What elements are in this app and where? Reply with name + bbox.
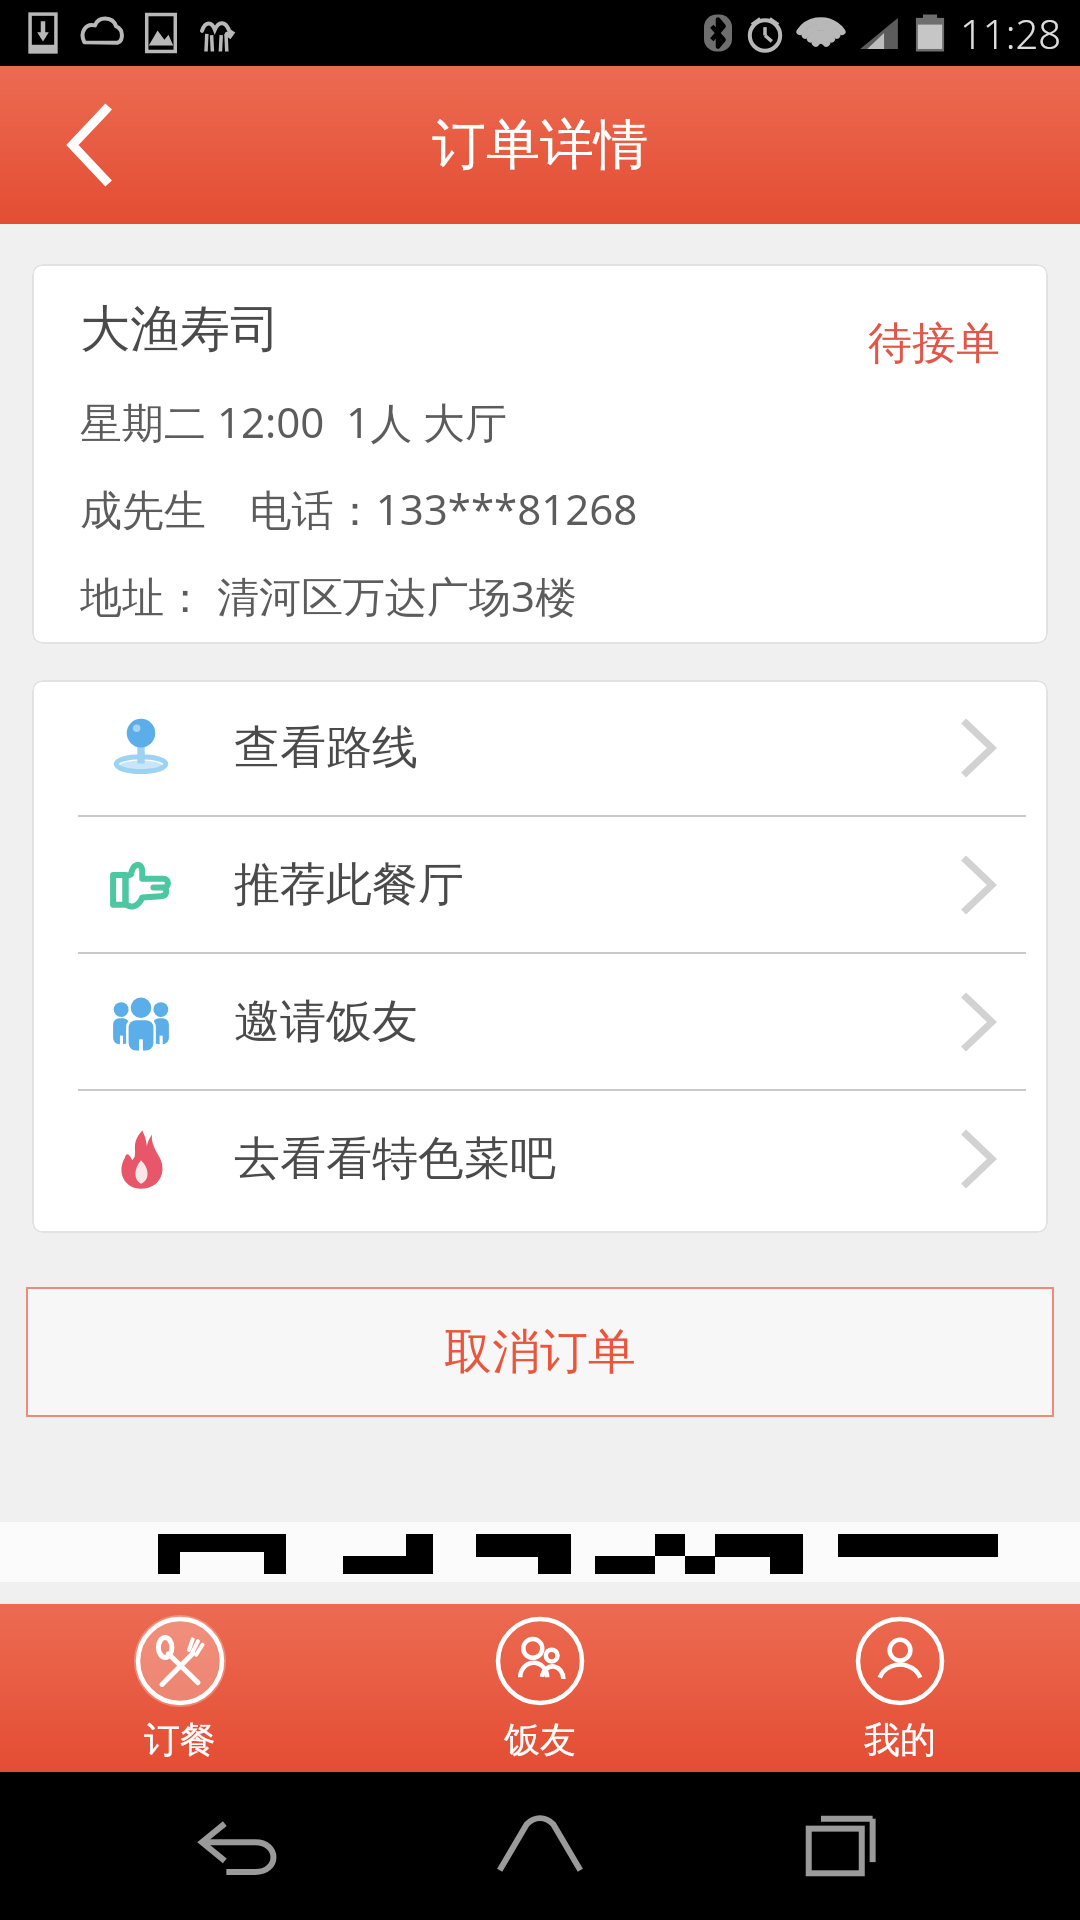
staticText: 11:28 [960, 6, 1062, 60]
button[interactable]: Recent apps [780, 1786, 900, 1906]
staticText: 成先生 电话：133***81268 [80, 480, 638, 537]
button[interactable]: 我的 [720, 1604, 1080, 1772]
staticText: 推荐此餐厅 [234, 856, 464, 914]
staticText: 地址： 清河区万达广场3楼 [80, 567, 577, 624]
button[interactable]: 订餐 [0, 1604, 360, 1772]
button[interactable]: 推荐此餐厅 [32, 817, 1048, 952]
button[interactable]: Home [480, 1786, 600, 1906]
staticText: 去看看特色菜吧 [234, 1130, 556, 1188]
staticText: 订单详情 [432, 111, 648, 179]
staticText: 饭友 [504, 1717, 576, 1762]
staticText: 邀请饭友 [234, 993, 418, 1051]
button[interactable]: 邀请饭友 [32, 954, 1048, 1089]
staticText: 我的 [864, 1717, 936, 1762]
button[interactable]: 取消订单 [26, 1287, 1054, 1417]
button[interactable]: Back [34, 90, 144, 200]
button[interactable]: Back [180, 1786, 300, 1906]
button[interactable]: 查看路线 [32, 680, 1048, 815]
staticText: 星期二 12:00 1人 大厅 [80, 393, 508, 450]
staticText: 待接单 [868, 316, 1000, 371]
staticText: 查看路线 [234, 719, 418, 777]
staticText: 订餐 [144, 1717, 216, 1762]
staticText: 大渔寿司 [80, 298, 280, 361]
staticText: 取消订单 [444, 1322, 636, 1382]
button[interactable]: 去看看特色菜吧 [32, 1091, 1048, 1226]
button[interactable]: 饭友 [360, 1604, 720, 1772]
